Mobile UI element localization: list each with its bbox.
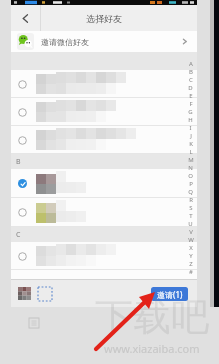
staticText: 邀请(1) xyxy=(157,289,183,300)
button[interactable] xyxy=(11,70,197,98)
staticText: V xyxy=(189,228,193,236)
button[interactable] xyxy=(11,126,197,154)
staticText: G xyxy=(188,108,193,116)
staticText: Z xyxy=(189,260,193,268)
staticText: B xyxy=(189,68,193,76)
staticText: 选择好友 xyxy=(86,13,122,24)
staticText: # xyxy=(189,268,193,276)
staticText: H xyxy=(188,116,193,124)
button[interactable] xyxy=(11,98,197,126)
other: Menu xyxy=(29,318,39,328)
staticText: P xyxy=(189,180,193,188)
staticText: Y xyxy=(189,252,193,260)
staticText: S xyxy=(189,204,193,212)
staticText: A xyxy=(189,60,193,68)
staticText: K xyxy=(189,140,193,148)
staticText: 邀请微信好友 xyxy=(41,37,89,47)
staticText: F xyxy=(189,100,193,108)
staticText: C xyxy=(189,76,193,84)
staticText: J xyxy=(190,132,192,140)
staticText: Q xyxy=(188,188,193,196)
button[interactable]: 邀请微信好友 xyxy=(11,31,197,52)
staticText: D xyxy=(188,84,193,92)
staticText: U xyxy=(188,220,193,228)
staticText: E xyxy=(189,92,193,100)
staticText: X xyxy=(189,244,193,252)
staticText: W xyxy=(188,236,194,244)
button[interactable] xyxy=(11,169,197,198)
button[interactable] xyxy=(11,242,197,270)
staticText: R xyxy=(189,196,193,204)
staticText: N xyxy=(188,164,193,172)
button[interactable]: Alphabet index xyxy=(185,60,196,276)
button[interactable]: Back xyxy=(11,5,40,31)
staticText: C xyxy=(16,230,21,240)
staticText: I xyxy=(189,124,192,132)
staticText: T xyxy=(189,212,193,220)
button[interactable]: 邀请(1) xyxy=(151,287,188,301)
staticText: O xyxy=(188,172,193,180)
staticText: M xyxy=(188,156,194,164)
staticText: L xyxy=(189,148,193,156)
staticText: www.xiazaiba.com xyxy=(104,341,200,356)
button[interactable] xyxy=(11,198,197,227)
staticText: 下载吧 xyxy=(95,293,209,341)
staticText: B xyxy=(16,157,21,167)
